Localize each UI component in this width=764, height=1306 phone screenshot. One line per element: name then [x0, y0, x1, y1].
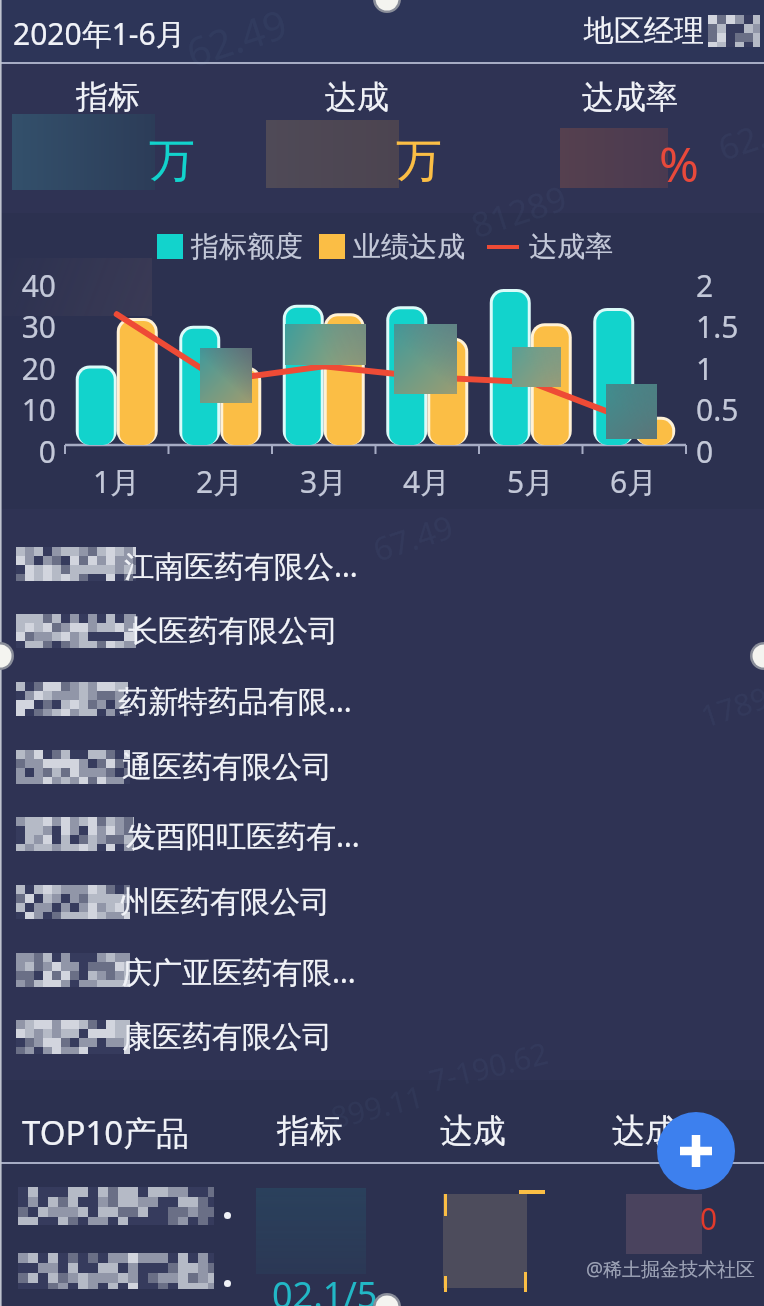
staticText: 81289	[465, 174, 573, 248]
staticText: @稀土掘金技术社区	[586, 1256, 756, 1282]
button[interactable]: 康医药有限公司	[0, 1007, 764, 1074]
staticText: 达成率	[555, 77, 705, 117]
staticText: 康医药有限公司	[122, 1018, 332, 1056]
staticText: 通医药有限公司	[122, 748, 332, 786]
button[interactable]: 发酉阳叿医药有…	[0, 804, 764, 871]
staticText: 达成率	[529, 229, 613, 264]
staticText: 30	[0, 306, 56, 347]
button[interactable]: 江南医药有限公…	[0, 534, 764, 601]
staticText: 业绩达成	[353, 229, 465, 264]
button[interactable]: 通医药有限公司	[0, 737, 764, 804]
staticText: 40	[0, 265, 56, 306]
button[interactable]: Add	[657, 1112, 735, 1190]
staticText: 药新特药品有限…	[118, 680, 352, 721]
staticText: 0.5	[696, 389, 739, 430]
staticText: 899.11	[326, 1075, 427, 1138]
staticText: %	[659, 131, 699, 196]
staticText: 达成率	[612, 1110, 711, 1152]
staticText: 6月	[582, 461, 685, 502]
staticText: 0	[700, 1198, 718, 1239]
button[interactable]: 州医药有限公司	[0, 872, 764, 939]
staticText: 1.5	[696, 306, 739, 347]
staticText: TOP10产品	[22, 1110, 190, 1155]
staticText: 2月	[168, 461, 271, 502]
staticText: 1	[696, 348, 714, 389]
staticText: 20	[0, 348, 56, 389]
staticText: 州医药有限公司	[120, 883, 330, 921]
staticText: 3月	[272, 461, 375, 502]
button[interactable]: 药新特药品有限…	[0, 669, 764, 736]
button[interactable]: 庆广亚医药有限…	[0, 940, 764, 1007]
staticText: 万	[149, 132, 195, 190]
staticText: 达成	[440, 1110, 506, 1152]
staticText: 0	[696, 431, 714, 472]
staticText: 地区经理	[584, 12, 704, 50]
staticText: 2	[696, 265, 714, 306]
button[interactable]: 长医药有限公司	[0, 601, 764, 668]
staticText: 指标	[48, 77, 168, 117]
staticText: 指标额度	[191, 229, 303, 264]
staticText: 10	[0, 389, 56, 430]
staticText: 长医药有限公司	[128, 612, 338, 650]
staticText: 5月	[479, 461, 582, 502]
staticText: 庆广亚医药有限…	[122, 951, 356, 992]
staticText: 指标	[277, 1110, 343, 1152]
staticText: 1月	[65, 461, 168, 502]
staticText: 4月	[375, 461, 478, 502]
staticText: 万	[396, 132, 442, 190]
staticText: 02.1/5	[272, 1270, 378, 1306]
staticText: 江南医药有限公…	[124, 545, 358, 586]
staticText: 发酉阳叿医药有…	[126, 815, 360, 856]
staticText: 达成	[297, 77, 417, 117]
staticText: 62.49	[179, 0, 294, 79]
staticText: 0	[0, 431, 56, 472]
staticText: 2020年1-6月	[13, 13, 186, 54]
